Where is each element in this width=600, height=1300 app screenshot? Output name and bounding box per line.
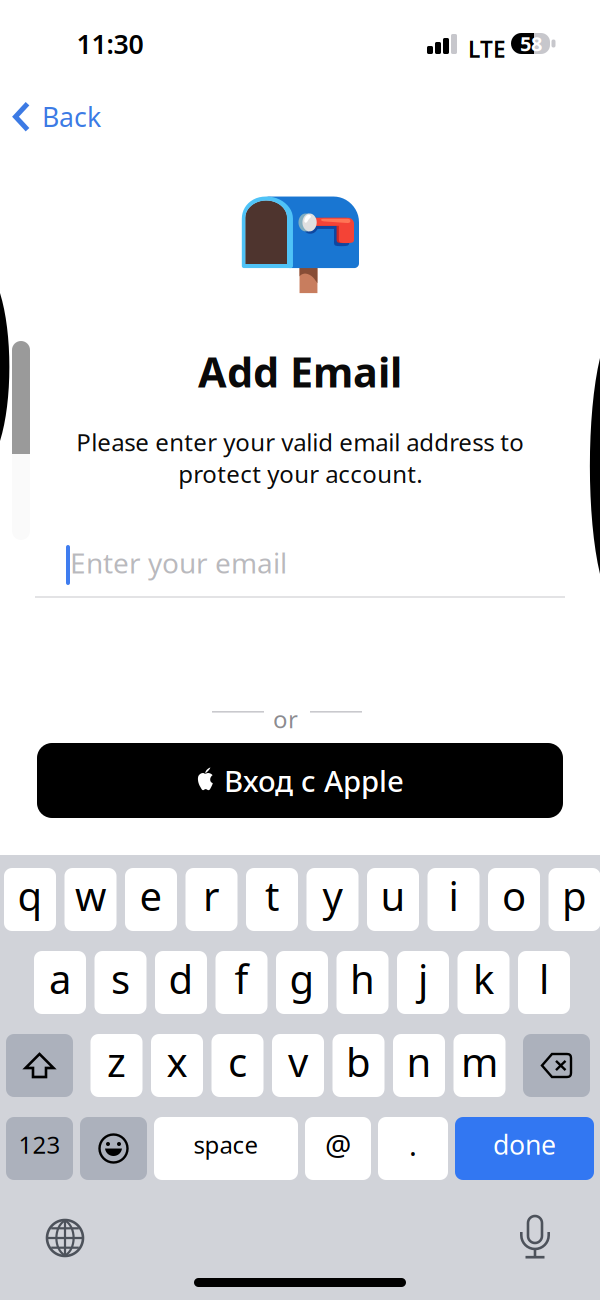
button[interactable]: 123 — [6, 1117, 73, 1180]
button[interactable]: Dictate — [521, 1216, 549, 1259]
staticText: u — [380, 869, 405, 922]
staticText: . — [409, 1125, 417, 1164]
staticText: f — [234, 952, 248, 1005]
button[interactable]: space — [154, 1117, 298, 1180]
staticText: g — [289, 952, 314, 1005]
button[interactable]: f — [215, 951, 267, 1014]
button[interactable]: @ — [305, 1117, 371, 1180]
button[interactable]: z — [90, 1034, 142, 1097]
button[interactable]: . — [378, 1117, 448, 1180]
staticText: p — [562, 869, 587, 922]
staticText: Enter your email — [70, 544, 287, 581]
button[interactable]: Back — [4, 92, 110, 141]
staticText: j — [418, 952, 428, 1005]
staticText: v — [288, 1035, 308, 1088]
button[interactable]: h — [336, 951, 388, 1014]
staticText: r — [203, 869, 220, 922]
staticText: Add Email — [198, 344, 402, 399]
button[interactable]: m — [453, 1034, 505, 1097]
staticText: LTE — [468, 34, 506, 64]
button[interactable]: y — [306, 868, 358, 931]
staticText: x — [166, 1035, 187, 1088]
staticText: m — [461, 1035, 498, 1088]
button[interactable]: r — [185, 868, 237, 931]
staticText: a — [49, 952, 71, 1005]
button[interactable]: n — [393, 1034, 445, 1097]
button[interactable]: l — [518, 951, 570, 1014]
button[interactable]: Вход с Apple — [37, 743, 563, 818]
staticText: Please enter your valid email address to… — [76, 426, 524, 490]
button[interactable]: i — [427, 868, 479, 931]
staticText: s — [111, 952, 130, 1005]
button[interactable]: k — [457, 951, 509, 1014]
button[interactable]: g — [276, 951, 328, 1014]
staticText: Back — [42, 99, 101, 134]
button[interactable]: d — [155, 951, 207, 1014]
staticText: l — [539, 952, 549, 1005]
button[interactable]: b — [332, 1034, 384, 1097]
button[interactable]: a — [34, 951, 86, 1014]
staticText: or — [273, 703, 298, 735]
staticText: @ — [325, 1125, 351, 1164]
staticText: done — [493, 1127, 556, 1162]
staticText: o — [502, 869, 526, 922]
button[interactable]: u — [367, 868, 419, 931]
button[interactable]: e — [125, 868, 177, 931]
staticText: q — [17, 869, 42, 922]
staticText: Вход с Apple — [224, 761, 404, 800]
button[interactable]: done — [455, 1117, 594, 1180]
button[interactable]: Next keyboard — [46, 1219, 84, 1257]
staticText: t — [265, 869, 279, 922]
button[interactable]: t — [246, 868, 298, 931]
staticText: 58 — [520, 30, 542, 57]
staticText: y — [322, 869, 342, 922]
staticText: c — [228, 1035, 247, 1088]
button[interactable]: j — [397, 951, 449, 1014]
button[interactable]: w — [64, 868, 116, 931]
staticText: i — [448, 869, 458, 922]
button[interactable]: Delete — [523, 1034, 590, 1097]
staticText: h — [350, 952, 375, 1005]
staticText: b — [346, 1035, 371, 1088]
button[interactable]: q — [4, 868, 56, 931]
staticText: 📭 — [233, 174, 366, 296]
staticText: 123 — [18, 1129, 60, 1160]
button[interactable]: p — [548, 868, 600, 931]
staticText: w — [75, 869, 106, 922]
staticText: k — [473, 952, 494, 1005]
staticText: space — [193, 1129, 258, 1160]
button[interactable]: c — [211, 1034, 263, 1097]
button[interactable]: Shift — [6, 1034, 73, 1097]
staticText: z — [107, 1035, 126, 1088]
staticText: e — [139, 869, 162, 922]
button[interactable]: v — [272, 1034, 324, 1097]
button[interactable]: Emoji keyboard — [80, 1117, 147, 1180]
staticText: d — [168, 952, 193, 1005]
staticText: 11:30 — [76, 26, 143, 61]
staticText: n — [406, 1035, 431, 1088]
button[interactable]: s — [94, 951, 146, 1014]
button[interactable]: x — [151, 1034, 203, 1097]
button[interactable]: o — [488, 868, 540, 931]
